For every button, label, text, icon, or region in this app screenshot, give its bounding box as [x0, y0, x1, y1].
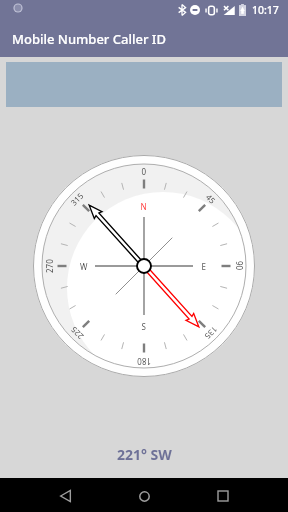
button[interactable]: Recent apps	[205, 478, 241, 512]
button[interactable]: Home	[126, 478, 162, 512]
button[interactable]: Back	[47, 478, 83, 512]
staticText: Mobile Number Caller ID	[12, 30, 166, 48]
staticText: 221° SW	[117, 445, 172, 464]
staticText: 10:17	[252, 3, 279, 17]
button[interactable]: Compass	[33, 155, 255, 377]
button[interactable]: Mobile Number Caller ID	[0, 20, 288, 57]
